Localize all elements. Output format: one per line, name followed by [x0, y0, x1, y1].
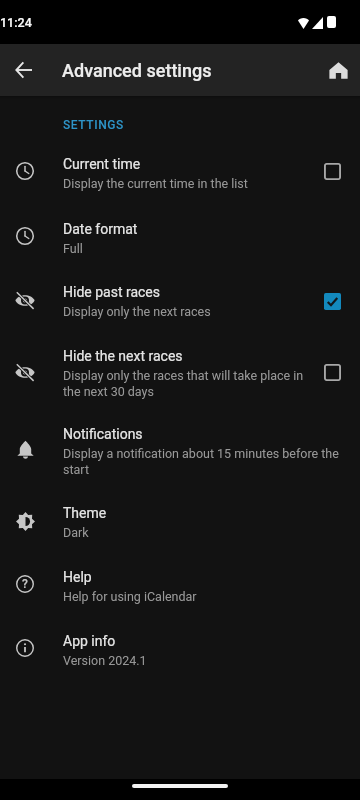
- staticText: Advanced settings: [62, 60, 212, 81]
- button[interactable]: Date format: [0, 203, 360, 267]
- staticText: Current time: [63, 156, 141, 172]
- button[interactable]: Home: [314, 46, 360, 94]
- staticText: SETTINGS: [63, 118, 124, 132]
- staticText: Version 2024.1: [63, 653, 147, 668]
- staticText: App info: [63, 633, 116, 649]
- button[interactable]: Current time: [0, 139, 360, 203]
- staticText: Display only the races that will take pl…: [63, 368, 323, 399]
- button[interactable]: Hide the next races: [0, 334, 360, 409]
- staticText: Date format: [63, 221, 138, 237]
- button[interactable]: ?: [0, 551, 360, 615]
- button[interactable]: Unchecked: [312, 151, 352, 191]
- staticText: Display a notification about 15 minutes …: [63, 446, 343, 477]
- button[interactable]: Notifications: [0, 409, 360, 484]
- staticText: ?: [22, 577, 28, 591]
- button[interactable]: Back: [0, 46, 48, 94]
- button[interactable]: Unchecked: [312, 352, 352, 392]
- staticText: Full: [63, 241, 83, 256]
- staticText: Dark: [63, 525, 89, 540]
- button[interactable]: App info: [0, 615, 360, 679]
- button[interactable]: Checked: [312, 281, 352, 321]
- staticText: Help for using iCalendar: [63, 589, 197, 604]
- staticText: Display the current time in the list: [63, 176, 248, 191]
- staticText: Hide the next races: [63, 348, 183, 364]
- staticText: Hide past races: [63, 284, 161, 300]
- staticText: 11:24: [0, 15, 32, 30]
- staticText: Notifications: [63, 426, 143, 442]
- staticText: Theme: [63, 505, 107, 521]
- staticText: Help: [63, 569, 92, 585]
- staticText: Display only the next races: [63, 304, 211, 319]
- button[interactable]: Theme: [0, 484, 360, 551]
- button[interactable]: Hide past races: [0, 267, 360, 334]
